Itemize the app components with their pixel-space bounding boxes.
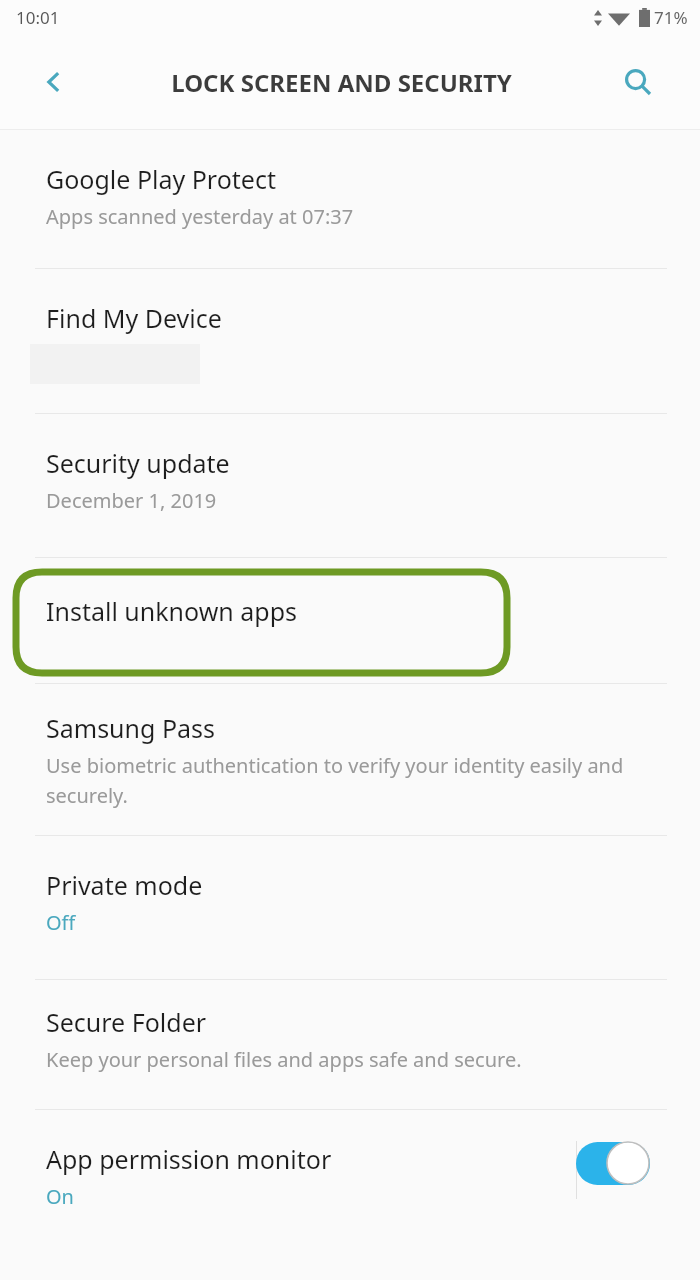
staticText: Security update	[46, 446, 230, 480]
button[interactable]: Private mode	[0, 836, 700, 979]
button[interactable]: Find My Device	[0, 269, 700, 413]
staticText: App permission monitor	[46, 1142, 332, 1176]
button[interactable]: Install unknown apps	[0, 558, 700, 683]
staticText: December 1, 2019	[46, 487, 217, 514]
staticText: On	[46, 1183, 74, 1210]
staticText: Apps scanned yesterday at 07:37	[46, 203, 354, 230]
staticText: Secure Folder	[46, 1005, 207, 1039]
staticText: Private mode	[46, 868, 203, 902]
button[interactable]: Security update	[0, 414, 700, 557]
staticText: Install unknown apps	[46, 594, 298, 628]
staticText: Samsung Pass	[46, 711, 215, 745]
button[interactable]: Google Play Protect	[0, 130, 700, 268]
staticText: Use biometric authentication to verify y…	[46, 752, 640, 809]
button[interactable]: Secure Folder	[0, 980, 700, 1109]
button[interactable]: Back	[26, 54, 82, 110]
button[interactable]: App permission monitor toggle	[576, 1141, 650, 1185]
staticText: Find My Device	[46, 301, 222, 335]
staticText: Keep your personal files and apps safe a…	[46, 1046, 522, 1073]
staticText: Google Play Protect	[46, 162, 276, 196]
button[interactable]: App permission monitor	[0, 1110, 700, 1230]
staticText: LOCK SCREEN AND SECURITY	[171, 66, 512, 99]
staticText: 71%	[654, 6, 688, 29]
staticText: Off	[46, 909, 76, 936]
button[interactable]: Search	[612, 56, 664, 108]
button[interactable]: Samsung Pass	[0, 684, 700, 835]
staticText: 10:01	[16, 6, 60, 29]
